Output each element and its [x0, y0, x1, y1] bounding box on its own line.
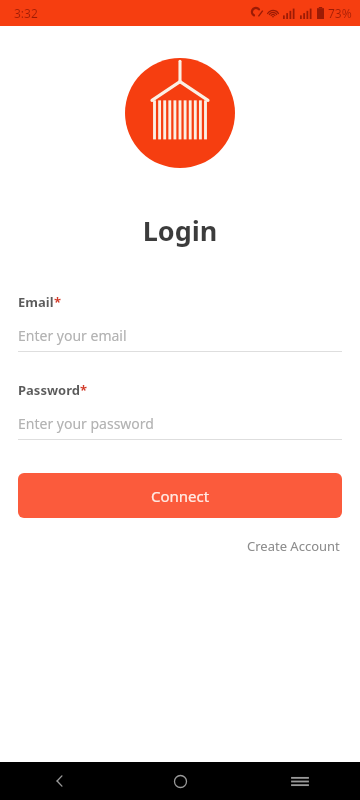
staticText: Create Account: [247, 537, 340, 555]
staticText: Enter your password: [18, 414, 154, 433]
staticText: *: [80, 381, 88, 399]
staticText: Connect: [151, 486, 210, 506]
staticText: Login: [0, 212, 360, 249]
button[interactable]: Recent apps: [240, 762, 360, 800]
staticText: *: [54, 293, 62, 311]
staticText: Email: [18, 293, 54, 311]
button[interactable]: Enter your email: [18, 324, 342, 346]
staticText: Enter your email: [18, 326, 127, 345]
button[interactable]: Create Account: [245, 533, 342, 559]
staticText: 73%: [328, 5, 352, 21]
button[interactable]: Back: [0, 762, 120, 800]
button[interactable]: Enter your password: [18, 412, 342, 434]
staticText: 3:32: [14, 5, 38, 21]
button[interactable]: Connect: [18, 473, 342, 518]
button[interactable]: Home: [120, 762, 240, 800]
staticText: Password: [18, 381, 80, 399]
